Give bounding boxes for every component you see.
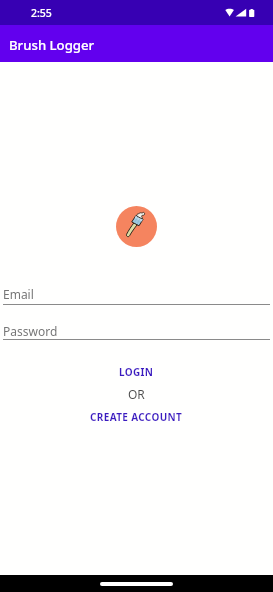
button[interactable]: CREATE ACCOUNT bbox=[78, 406, 195, 428]
staticText: OR bbox=[128, 386, 145, 402]
staticText: Email bbox=[3, 286, 34, 302]
button[interactable]: Home bbox=[100, 582, 173, 586]
other: Wifi, signal and battery status bbox=[225, 9, 255, 19]
staticText: Password bbox=[3, 323, 58, 339]
button[interactable]: Email bbox=[0, 282, 273, 306]
staticText: CREATE ACCOUNT bbox=[90, 410, 183, 424]
staticText: 2:55 bbox=[31, 6, 52, 20]
staticText: Brush Logger bbox=[9, 36, 95, 54]
button[interactable]: LOGIN bbox=[107, 361, 166, 383]
staticText: LOGIN bbox=[119, 365, 154, 379]
button[interactable]: Password bbox=[0, 319, 273, 343]
